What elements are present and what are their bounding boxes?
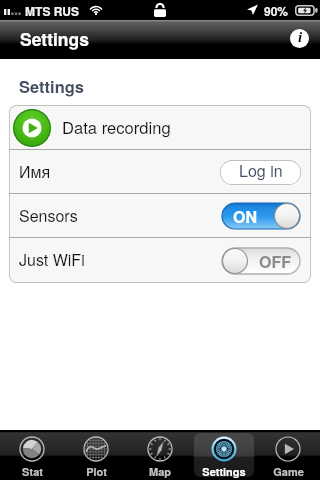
staticText: Data recording [62, 115, 171, 139]
button[interactable]: Plot [64, 430, 128, 480]
staticText: Settings [20, 26, 89, 51]
staticText: Just WiFi [19, 248, 85, 271]
staticText: OFF [259, 250, 292, 273]
staticText: Имя [19, 164, 51, 182]
staticText: Game [273, 464, 304, 480]
button[interactable]: Имя [9, 150, 311, 194]
staticText: MTS RUS [25, 2, 80, 19]
button[interactable]: Settings [192, 430, 256, 480]
staticText: Stat [22, 464, 43, 480]
staticText: i [298, 29, 303, 46]
button[interactable]: Stat [0, 430, 64, 480]
staticText: ON [233, 205, 258, 228]
staticText: Log in [239, 160, 283, 182]
button[interactable]: Sensors [9, 194, 311, 238]
button[interactable]: On [222, 203, 300, 229]
staticText: Plot [86, 464, 107, 480]
staticText: Settings [202, 464, 246, 480]
button[interactable]: Game [256, 430, 320, 480]
button[interactable]: Log in [220, 160, 301, 185]
staticText: Settings [19, 74, 85, 98]
staticText: Sensors [19, 204, 78, 227]
button[interactable]: Data recording [9, 105, 311, 150]
button[interactable]: Off [222, 248, 300, 274]
staticText: Map [149, 464, 171, 480]
button[interactable]: Just WiFi [9, 238, 311, 283]
staticText: 90% [264, 2, 289, 19]
button[interactable]: Info [290, 29, 309, 48]
button[interactable]: Map [128, 430, 192, 480]
